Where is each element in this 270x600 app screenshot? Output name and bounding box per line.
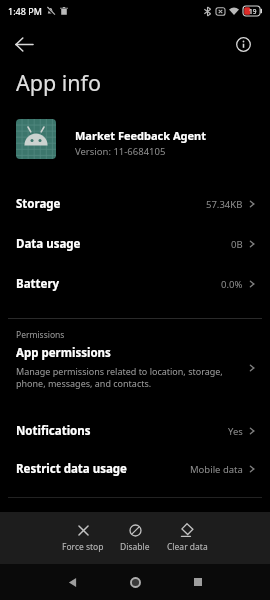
staticText: App info bbox=[16, 68, 102, 97]
button[interactable]: Clear data bbox=[161, 512, 213, 564]
staticText: 19 bbox=[249, 7, 257, 16]
button[interactable]: Force stop bbox=[57, 512, 109, 564]
button[interactable] bbox=[229, 30, 257, 58]
button[interactable]: Notifications bbox=[0, 411, 270, 451]
staticText: Yes bbox=[228, 425, 243, 438]
staticText: Manage permissions related to location, … bbox=[16, 365, 223, 390]
button[interactable]: Restrict data usage bbox=[0, 449, 270, 489]
staticText: Force stop bbox=[62, 541, 104, 553]
staticText: 0.0% bbox=[221, 278, 243, 291]
staticText: Restrict data usage bbox=[16, 461, 127, 477]
staticText: 57.34KB bbox=[206, 198, 243, 211]
staticText: Battery bbox=[16, 276, 60, 292]
staticText: App permissions bbox=[16, 345, 111, 361]
staticText: Permissions bbox=[16, 329, 65, 341]
staticText: 0B bbox=[231, 238, 243, 251]
button[interactable]: Disable bbox=[109, 512, 161, 564]
staticText: 1:48 PM bbox=[8, 5, 42, 17]
button[interactable] bbox=[184, 564, 212, 600]
button[interactable]: Data usage bbox=[0, 224, 270, 264]
button[interactable]: App permissions bbox=[0, 342, 270, 394]
staticText: Mobile data bbox=[190, 463, 243, 476]
button[interactable]: Battery bbox=[0, 264, 270, 304]
staticText: Storage bbox=[16, 196, 61, 212]
button[interactable] bbox=[58, 564, 86, 600]
button[interactable]: Storage bbox=[0, 184, 270, 224]
staticText: Clear data bbox=[167, 541, 208, 553]
staticText: Market Feedback Agent bbox=[75, 128, 206, 143]
button[interactable] bbox=[10, 30, 38, 58]
staticText: Disable bbox=[120, 541, 150, 553]
staticText: Data usage bbox=[16, 236, 81, 252]
staticText: Notifications bbox=[16, 423, 91, 439]
button[interactable] bbox=[121, 564, 149, 600]
staticText: Version: 11-6684105 bbox=[75, 145, 166, 158]
